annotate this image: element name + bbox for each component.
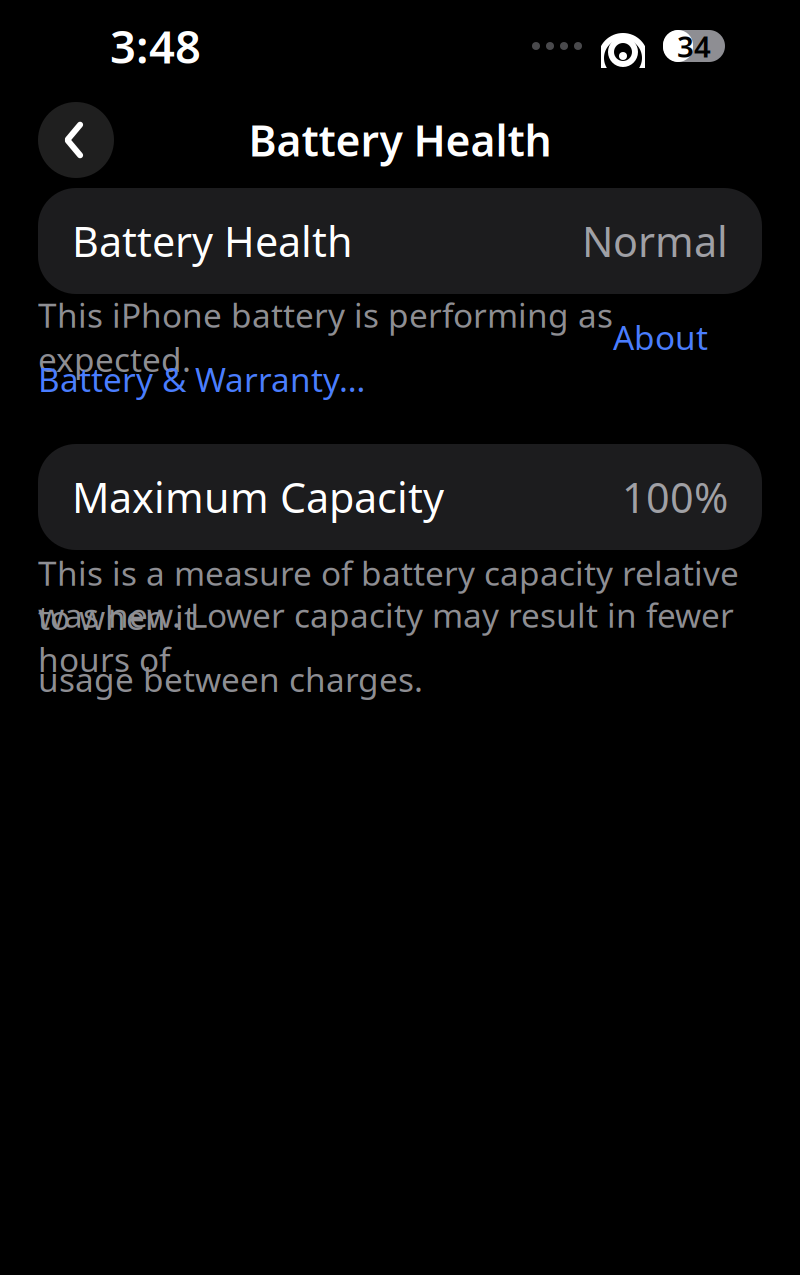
button[interactable]: Battery Health [38,188,762,294]
staticText: usage between charges. [38,657,423,701]
staticText: This is a measure of battery capacity re… [38,551,739,639]
staticText: 34 [677,26,711,65]
button[interactable]: Battery & Warranty… [38,357,365,401]
staticText: This iPhone battery is performing as exp… [38,293,613,381]
button[interactable]: Maximum Capacity [38,444,762,550]
staticText: Normal [582,214,728,268]
staticText: 3:48 [110,16,201,76]
staticText: Battery Health [248,112,551,168]
button[interactable]: Back [38,102,114,178]
staticText: Battery Health [72,214,353,268]
staticText: was new. Lower capacity may result in fe… [38,593,734,681]
button[interactable]: About [613,315,708,359]
staticText: Maximum Capacity [72,470,444,524]
staticText: 100% [622,470,728,524]
staticText: About [613,315,708,359]
staticText: Battery & Warranty… [38,357,365,401]
